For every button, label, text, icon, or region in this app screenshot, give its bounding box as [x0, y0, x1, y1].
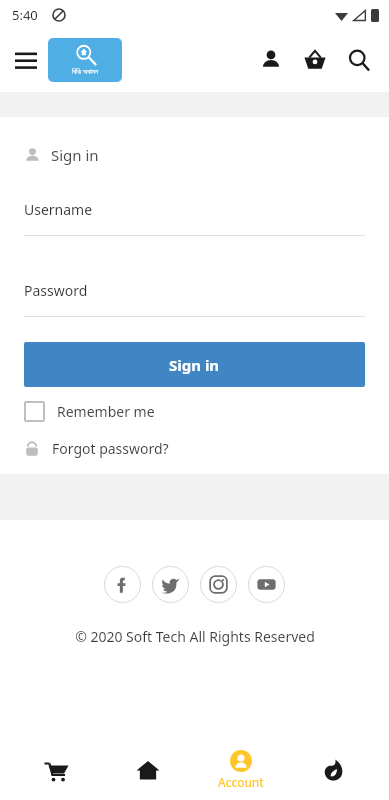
- button[interactable]: Menu: [6, 40, 46, 80]
- button[interactable]: YouTube: [248, 566, 285, 603]
- button[interactable]: Cart: [293, 38, 337, 82]
- button[interactable]: Logo: [48, 38, 122, 82]
- button[interactable]: Remember me: [24, 401, 155, 422]
- button[interactable]: Trending: [297, 740, 369, 800]
- staticText: Forgot password?: [52, 439, 169, 458]
- button[interactable]: Twitter: [152, 566, 189, 603]
- staticText: Remember me: [57, 402, 155, 421]
- button[interactable]: Sign in: [24, 342, 365, 387]
- button[interactable]: Facebook: [104, 566, 141, 603]
- staticText: বিডি অবাসন: [72, 67, 99, 77]
- button[interactable]: Profile: [249, 38, 293, 82]
- staticText: Account: [218, 774, 264, 790]
- button[interactable]: Forgot password?: [24, 439, 169, 458]
- staticText: 5:40: [12, 6, 38, 24]
- staticText: © 2020 Soft Tech All Rights Reserved: [75, 627, 315, 646]
- button[interactable]: Home: [112, 740, 184, 800]
- button[interactable]: Cart: [20, 740, 92, 800]
- button[interactable]: Account: [205, 740, 277, 800]
- staticText: Username: [24, 200, 93, 219]
- staticText: Password: [24, 281, 88, 300]
- button[interactable]: Search: [337, 38, 381, 82]
- button[interactable]: Instagram: [200, 566, 237, 603]
- staticText: Sign in: [169, 355, 220, 375]
- staticText: Sign in: [51, 145, 99, 165]
